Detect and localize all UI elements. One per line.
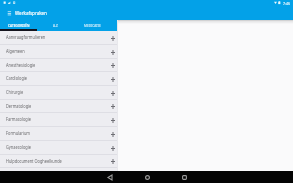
- button[interactable]: CATEGORIEËN: [0, 20, 37, 31]
- button[interactable]: Formularium: [0, 127, 117, 141]
- button[interactable]: Aanvraagformulieren: [0, 31, 117, 45]
- staticText: Anesthesiologie: [6, 61, 35, 69]
- button[interactable]: Chirurgie: [0, 86, 117, 100]
- button[interactable]: Gynaecologie: [0, 141, 117, 155]
- button[interactable]: Algemeen: [0, 45, 117, 59]
- staticText: Gynaecologie: [6, 143, 31, 151]
- staticText: Chirurgie: [6, 88, 23, 96]
- button[interactable]: Dermatologie: [0, 100, 117, 113]
- button[interactable]: Farmacologie: [0, 113, 117, 127]
- staticText: Algemeen: [6, 47, 25, 55]
- button[interactable]: MEDICATIE: [74, 20, 111, 31]
- staticText: MEDICATIE: [84, 24, 101, 28]
- button[interactable]: A-Z: [37, 20, 74, 31]
- staticText: Formularium: [6, 129, 30, 137]
- staticText: A-Z: [53, 24, 58, 28]
- button[interactable]: Open navigation menu: [5, 9, 13, 18]
- staticText: 7:46: [283, 1, 291, 6]
- button[interactable]: Recent apps: [176, 171, 192, 183]
- button[interactable]: Home: [139, 171, 155, 183]
- button[interactable]: Anesthesiologie: [0, 59, 117, 72]
- button[interactable]: Cardiologie: [0, 72, 117, 86]
- staticText: Farmacologie: [6, 115, 31, 123]
- staticText: Werkafspraken: [15, 10, 47, 16]
- staticText: Aanvraagformulieren: [6, 33, 46, 41]
- staticText: Cardiologie: [6, 74, 28, 82]
- button[interactable]: Back: [102, 171, 118, 183]
- staticText: Hulpdocument Oogheelkunde: [6, 157, 62, 165]
- button[interactable]: Hulpdocument Oogheelkunde: [0, 155, 117, 168]
- staticText: CATEGORIEËN: [8, 24, 30, 28]
- staticText: Dermatologie: [6, 102, 32, 110]
